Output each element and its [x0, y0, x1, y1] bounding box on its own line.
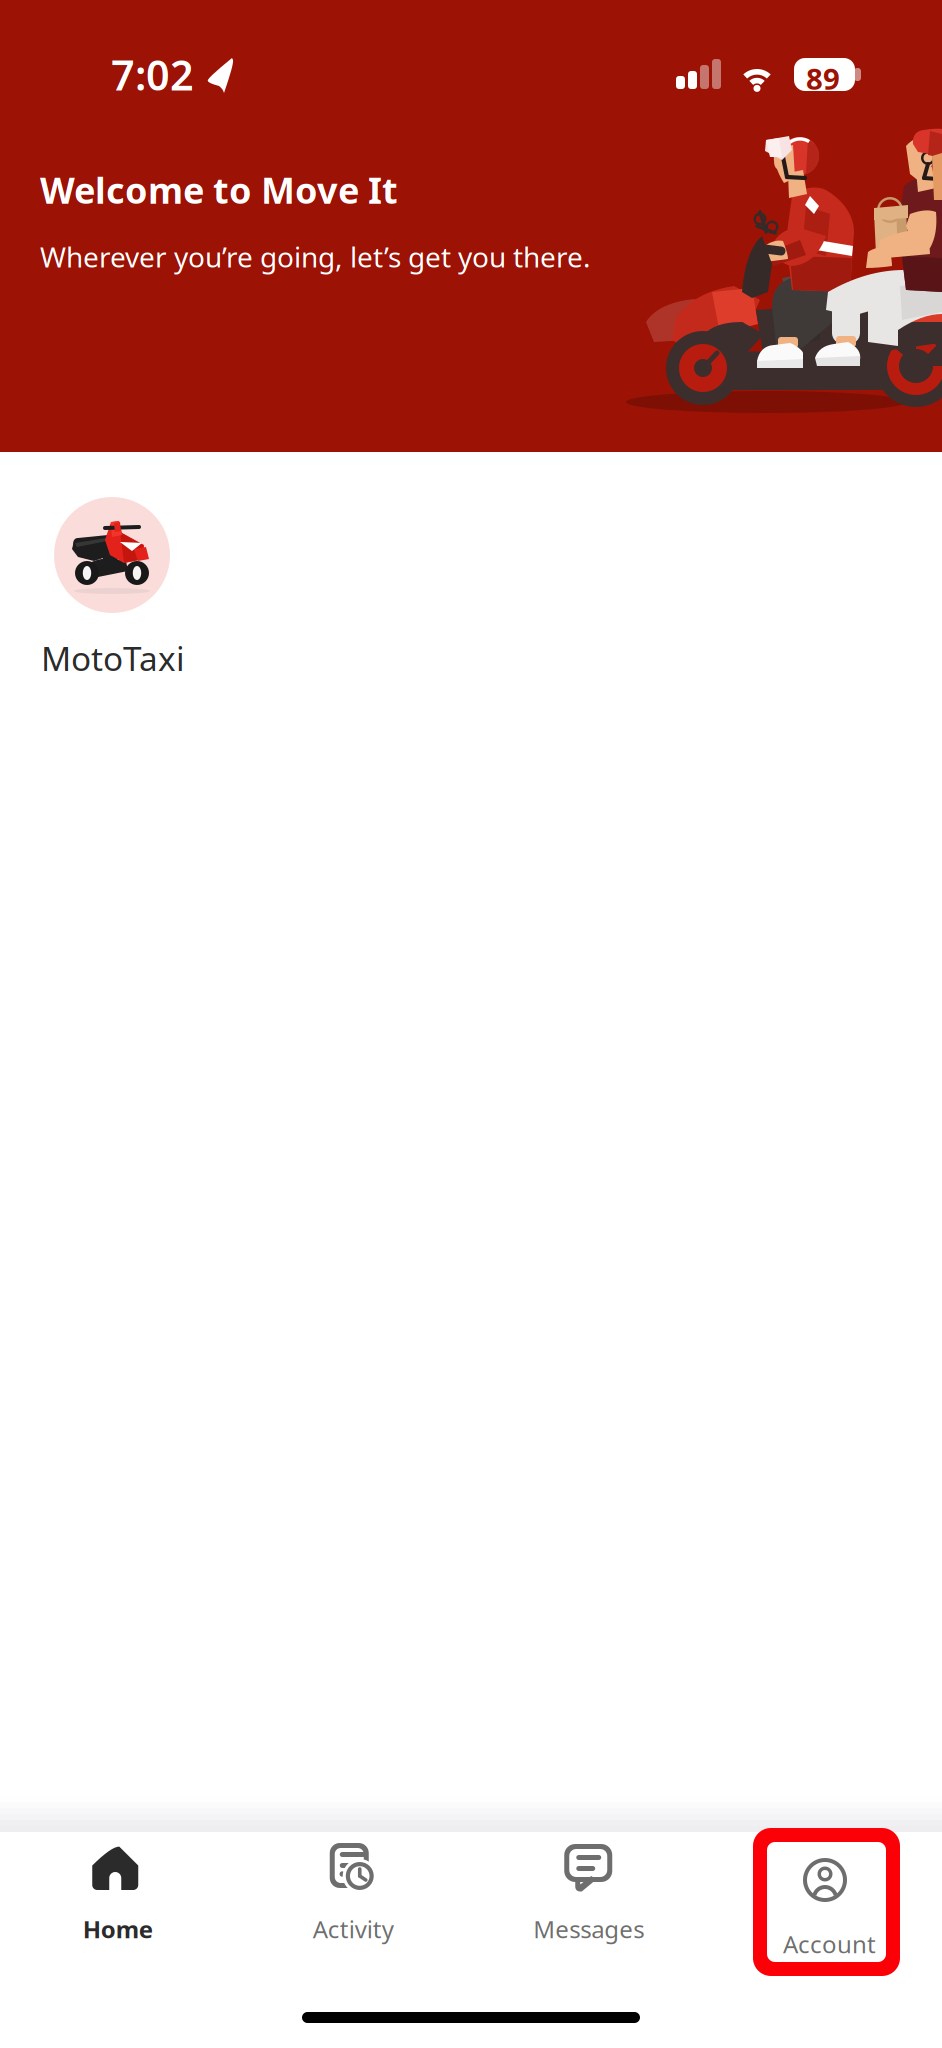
staticText: Account [778, 1913, 871, 1945]
button[interactable]: Account [706, 1842, 942, 1945]
staticText: Account [783, 1928, 876, 1960]
staticText: Activity [313, 1913, 394, 1945]
staticText: Home [83, 1913, 153, 1945]
staticText: Welcome to Move It [40, 166, 398, 214]
staticText: 7:02 [111, 47, 194, 102]
staticText: Wherever you’re going, let’s get you the… [40, 238, 591, 275]
staticText: Messages [533, 1913, 644, 1945]
button[interactable]: Messages [471, 1842, 706, 1945]
button[interactable]: MotoTaxi [54, 497, 234, 677]
button[interactable]: Activity [235, 1842, 471, 1945]
staticText: 89 [806, 59, 840, 98]
button[interactable]: Home [0, 1842, 235, 1945]
staticText: MotoTaxi [41, 636, 185, 680]
